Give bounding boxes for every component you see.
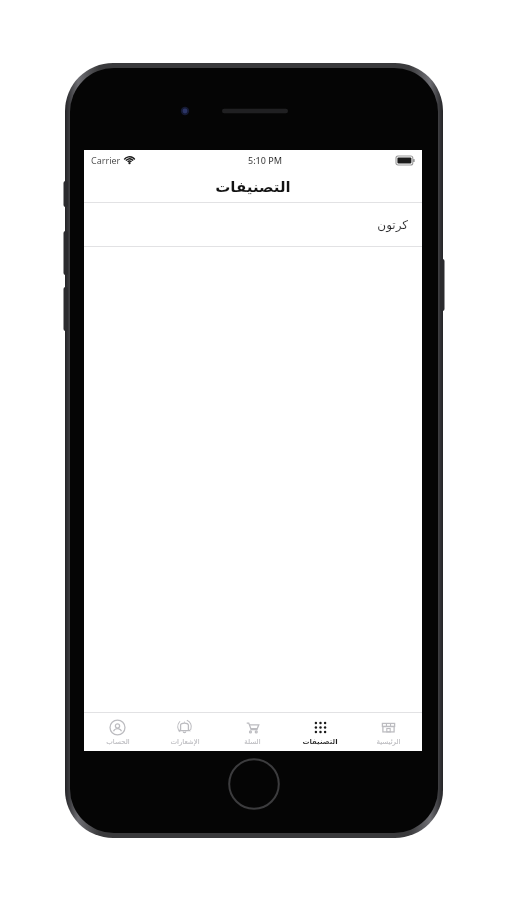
button[interactable]: كرتون: [84, 203, 422, 247]
staticText: كرتون: [377, 218, 408, 232]
button[interactable]: الإشعارات: [151, 713, 218, 751]
button[interactable]: الحساب: [84, 713, 151, 751]
staticText: 5:10 PM: [248, 154, 282, 166]
button[interactable]: التصنيفات: [286, 713, 354, 751]
staticText: Carrier: [91, 154, 121, 166]
staticText: الرئيسية: [376, 738, 401, 746]
staticText: التصنيفات: [215, 178, 291, 195]
staticText: الإشعارات: [170, 738, 200, 746]
staticText: التصنيفات: [302, 738, 338, 746]
button[interactable]: السلة: [218, 713, 286, 751]
staticText: الحساب: [106, 738, 130, 746]
button[interactable]: الرئيسية: [354, 713, 422, 751]
staticText: السلة: [244, 738, 261, 746]
